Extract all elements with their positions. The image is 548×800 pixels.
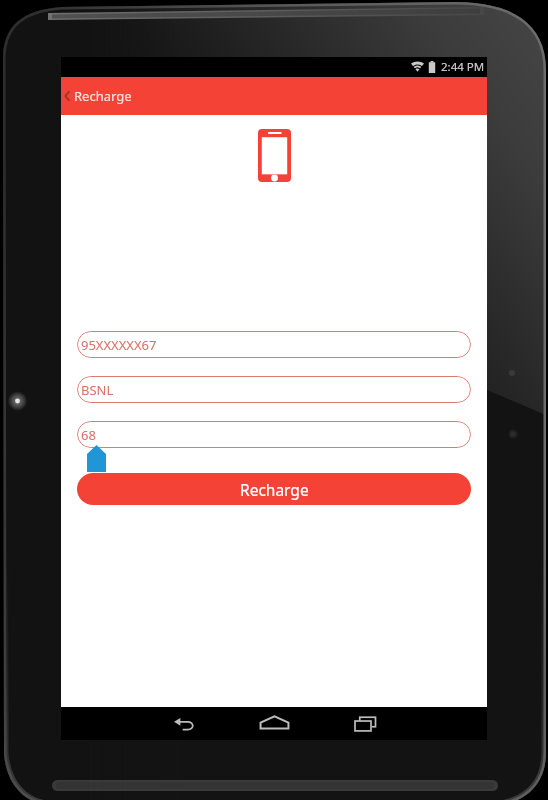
button[interactable]: Back — [61, 77, 487, 115]
button[interactable]: BSNL — [77, 376, 471, 403]
button[interactable]: 95XXXXXX67 — [77, 331, 471, 358]
staticText: 68 — [81, 426, 96, 444]
button[interactable]: Back — [138, 707, 229, 740]
staticText: 2:44 PM — [441, 59, 485, 75]
staticText: Recharge — [240, 479, 309, 500]
staticText: Recharge — [74, 87, 132, 105]
button[interactable]: Recent apps — [320, 707, 411, 740]
button[interactable]: Home — [229, 707, 320, 740]
staticText: BSNL — [81, 381, 114, 399]
other: Back — [63, 89, 71, 103]
staticText: 95XXXXXX67 — [81, 336, 157, 354]
button[interactable]: Recharge — [77, 473, 471, 505]
button[interactable]: 68 — [77, 421, 471, 448]
